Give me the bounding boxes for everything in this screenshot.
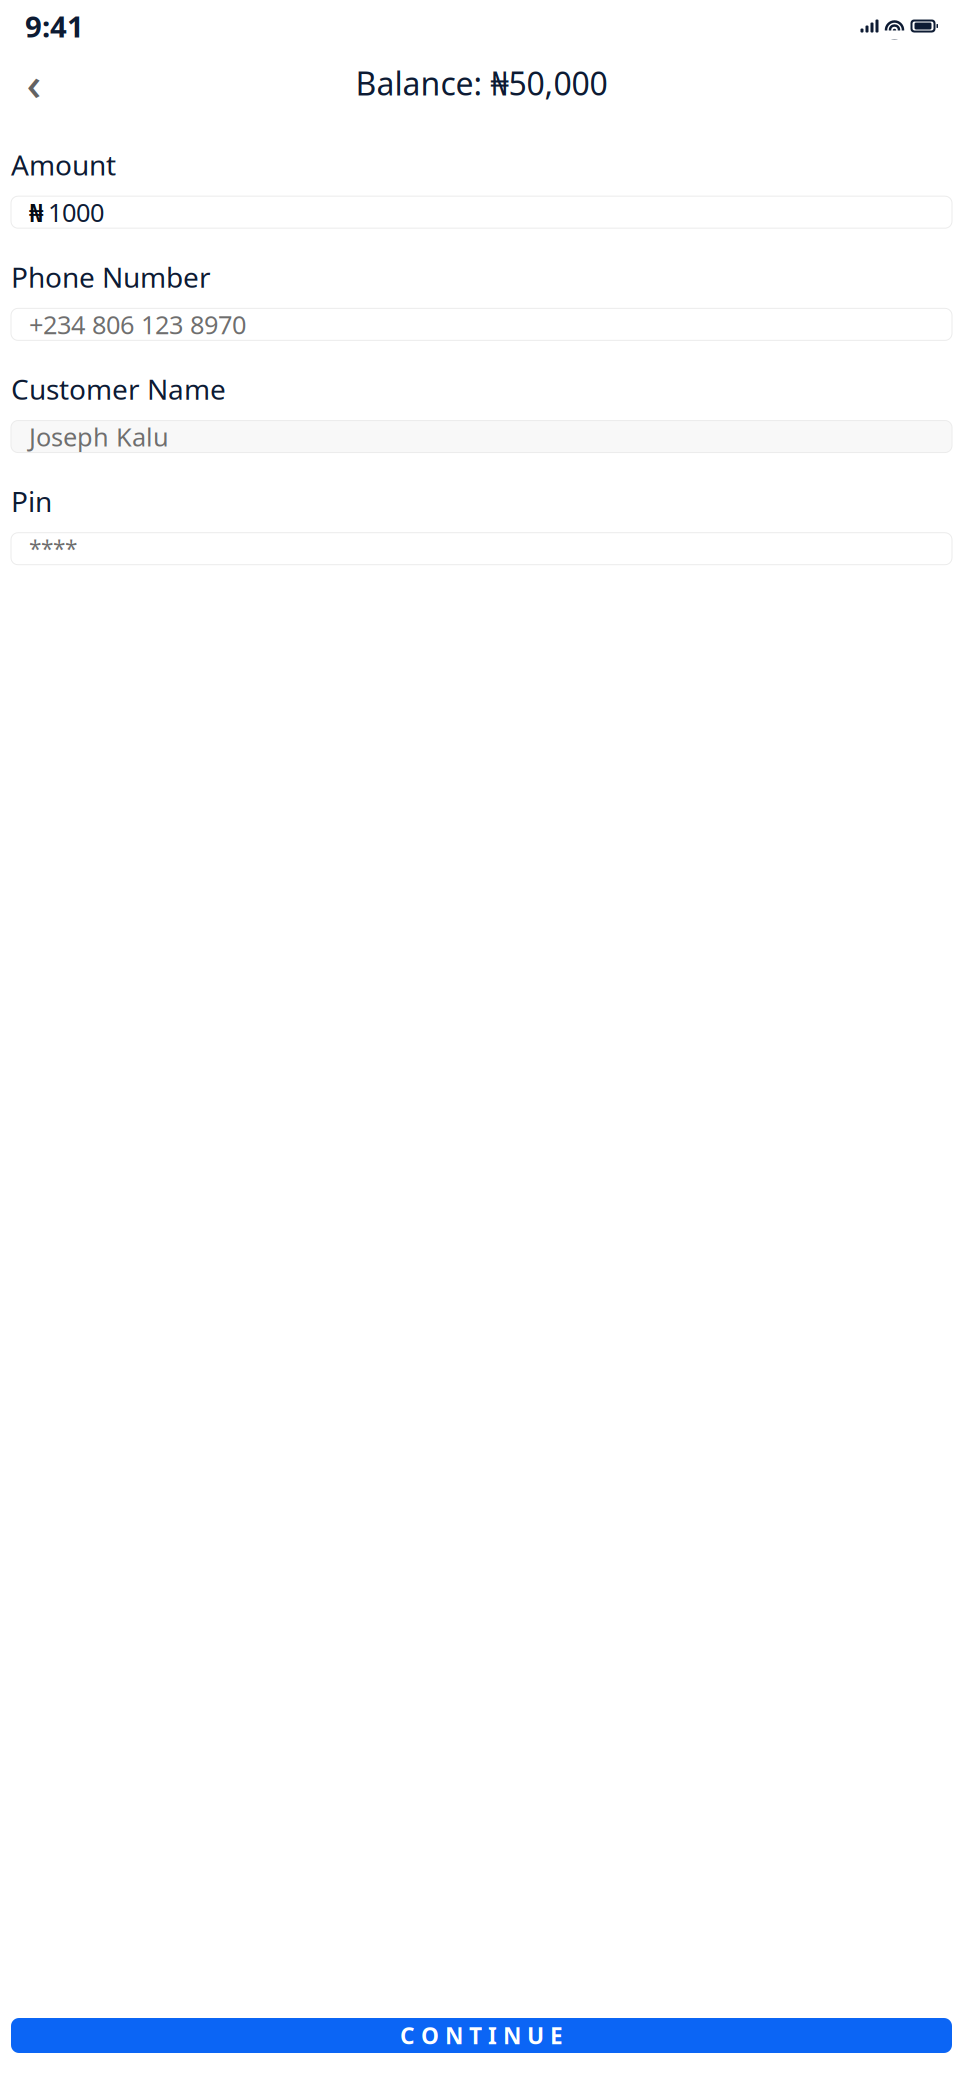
button[interactable]: ₦	[11, 196, 952, 228]
button[interactable]: Back	[14, 63, 54, 103]
button[interactable]: +234 806 123 8970	[11, 308, 952, 340]
button[interactable]: C O N T I N U E	[11, 2018, 952, 2053]
button[interactable]: Joseph Kalu	[11, 420, 952, 452]
staticText: Amount	[11, 146, 116, 183]
staticText: +234 806 123 8970	[29, 307, 246, 341]
staticText: Balance: ₦50,000	[355, 62, 607, 104]
button[interactable]: ****	[11, 533, 952, 565]
staticText: ₦	[29, 195, 43, 229]
staticText: Customer Name	[11, 370, 226, 408]
staticText: ‹	[26, 53, 41, 113]
staticText: 1000	[48, 195, 104, 229]
staticText: ****	[29, 534, 77, 564]
staticText: 9:41	[25, 6, 84, 45]
staticText: Phone Number	[11, 258, 211, 295]
staticText: Pin	[11, 482, 52, 520]
staticText: Joseph Kalu	[29, 420, 169, 453]
staticText: C O N T I N U E	[400, 2020, 563, 2050]
